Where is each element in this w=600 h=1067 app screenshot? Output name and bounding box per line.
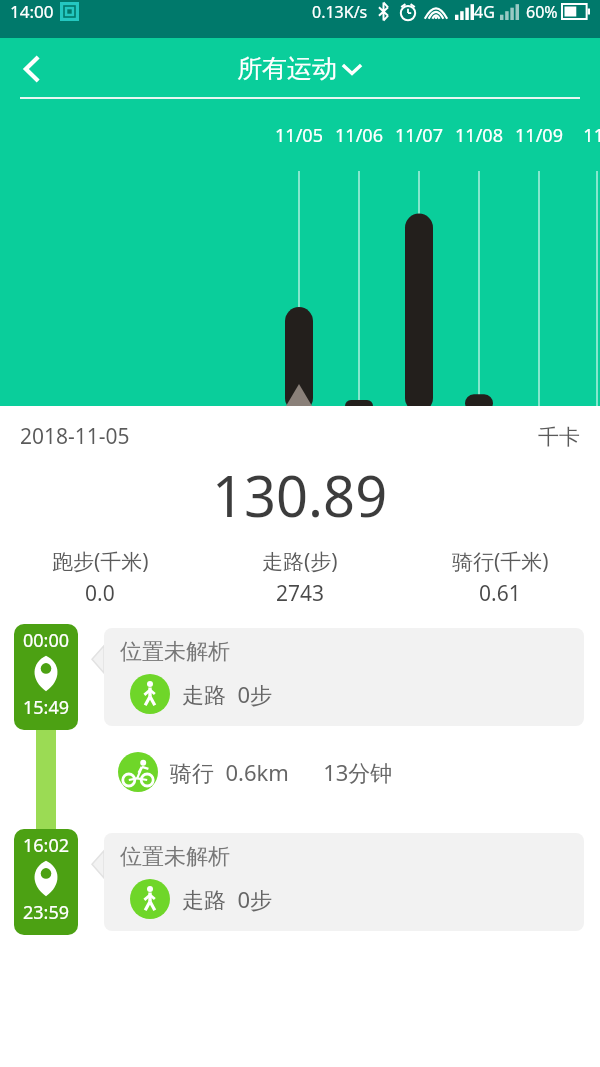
- staticText: 11/: [564, 123, 600, 148]
- button[interactable]: 16:02: [14, 829, 78, 935]
- staticText: 千卡: [538, 424, 580, 450]
- staticText: 130.89: [212, 457, 388, 533]
- staticText: 位置未解析: [120, 843, 230, 871]
- button[interactable]: Back: [6, 43, 58, 95]
- staticText: 11/05: [266, 123, 332, 148]
- staticText: 14:00: [10, 0, 54, 23]
- staticText: 所有运动: [237, 53, 337, 84]
- button[interactable]: 跑步(千米): [0, 547, 200, 608]
- staticText: 16:02: [23, 833, 70, 858]
- staticText: 骑行(千米): [452, 547, 549, 576]
- staticText: 走路 0步: [182, 884, 273, 914]
- button[interactable]: 位置未解析: [92, 833, 584, 931]
- button[interactable]: 位置未解析: [92, 628, 584, 726]
- staticText: 15:49: [23, 695, 70, 720]
- staticText: 跑步(千米): [52, 547, 149, 576]
- staticText: 11/08: [446, 123, 512, 148]
- staticText: 骑行 0.6km 13分钟: [170, 757, 393, 787]
- button[interactable]: 00:00: [14, 624, 78, 730]
- staticText: 60%: [526, 1, 558, 23]
- staticText: 23:59: [23, 900, 70, 925]
- staticText: 11/07: [386, 123, 452, 148]
- staticText: 11/06: [326, 123, 392, 148]
- staticText: 0.0: [85, 579, 115, 608]
- staticText: 走路(步): [262, 547, 338, 576]
- staticText: 2018-11-05: [20, 422, 130, 451]
- button[interactable]: 走路(步): [200, 547, 400, 608]
- staticText: 00:00: [23, 628, 70, 653]
- button[interactable]: 骑行(千米): [400, 547, 600, 608]
- button[interactable]: 所有运动: [237, 53, 364, 84]
- staticText: 11/09: [506, 123, 572, 148]
- button[interactable]: 骑行 0.6km 13分钟: [118, 752, 393, 792]
- staticText: 位置未解析: [120, 638, 230, 666]
- staticText: 走路 0步: [182, 679, 273, 709]
- staticText: 0.61: [479, 579, 521, 608]
- staticText: 0.13K/s: [312, 1, 368, 23]
- staticText: 2743: [276, 579, 325, 608]
- staticText: 4G: [474, 1, 495, 23]
